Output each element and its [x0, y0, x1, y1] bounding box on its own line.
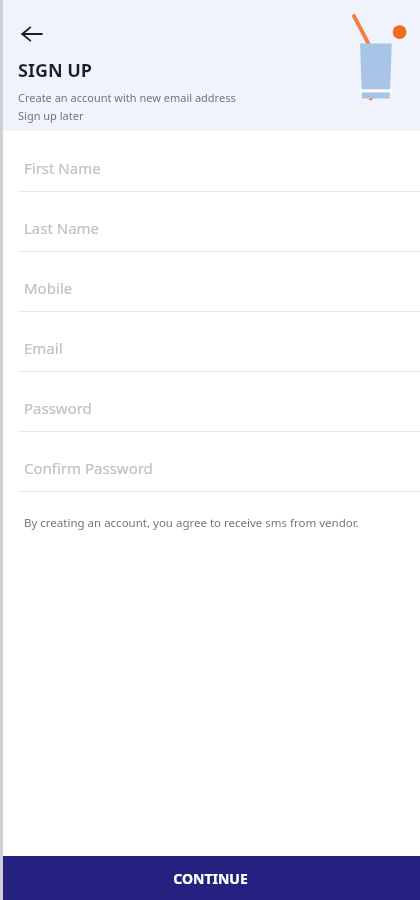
staticText: Mobile	[24, 278, 73, 298]
staticText: By creating an account, you agree to rec…	[24, 515, 359, 531]
staticText: Create an account with new email address	[18, 90, 236, 105]
button[interactable]: Email	[0, 312, 420, 372]
staticText: Password	[24, 398, 92, 418]
button[interactable]: Back	[12, 14, 52, 54]
staticText: CONTINUE	[173, 869, 248, 888]
button[interactable]: CONTINUE	[0, 856, 420, 900]
button[interactable]: Confirm Password	[0, 432, 420, 492]
button[interactable]: Mobile	[0, 252, 420, 312]
button[interactable]: Last Name	[0, 192, 420, 252]
staticText: First Name	[24, 158, 101, 178]
button[interactable]: Sign up later	[18, 108, 84, 123]
button[interactable]: Password	[0, 372, 420, 432]
staticText: Confirm Password	[24, 458, 153, 478]
staticText: SIGN UP	[18, 58, 93, 83]
staticText: Email	[24, 338, 63, 358]
staticText: Last Name	[24, 218, 100, 238]
button[interactable]: First Name	[0, 131, 420, 192]
